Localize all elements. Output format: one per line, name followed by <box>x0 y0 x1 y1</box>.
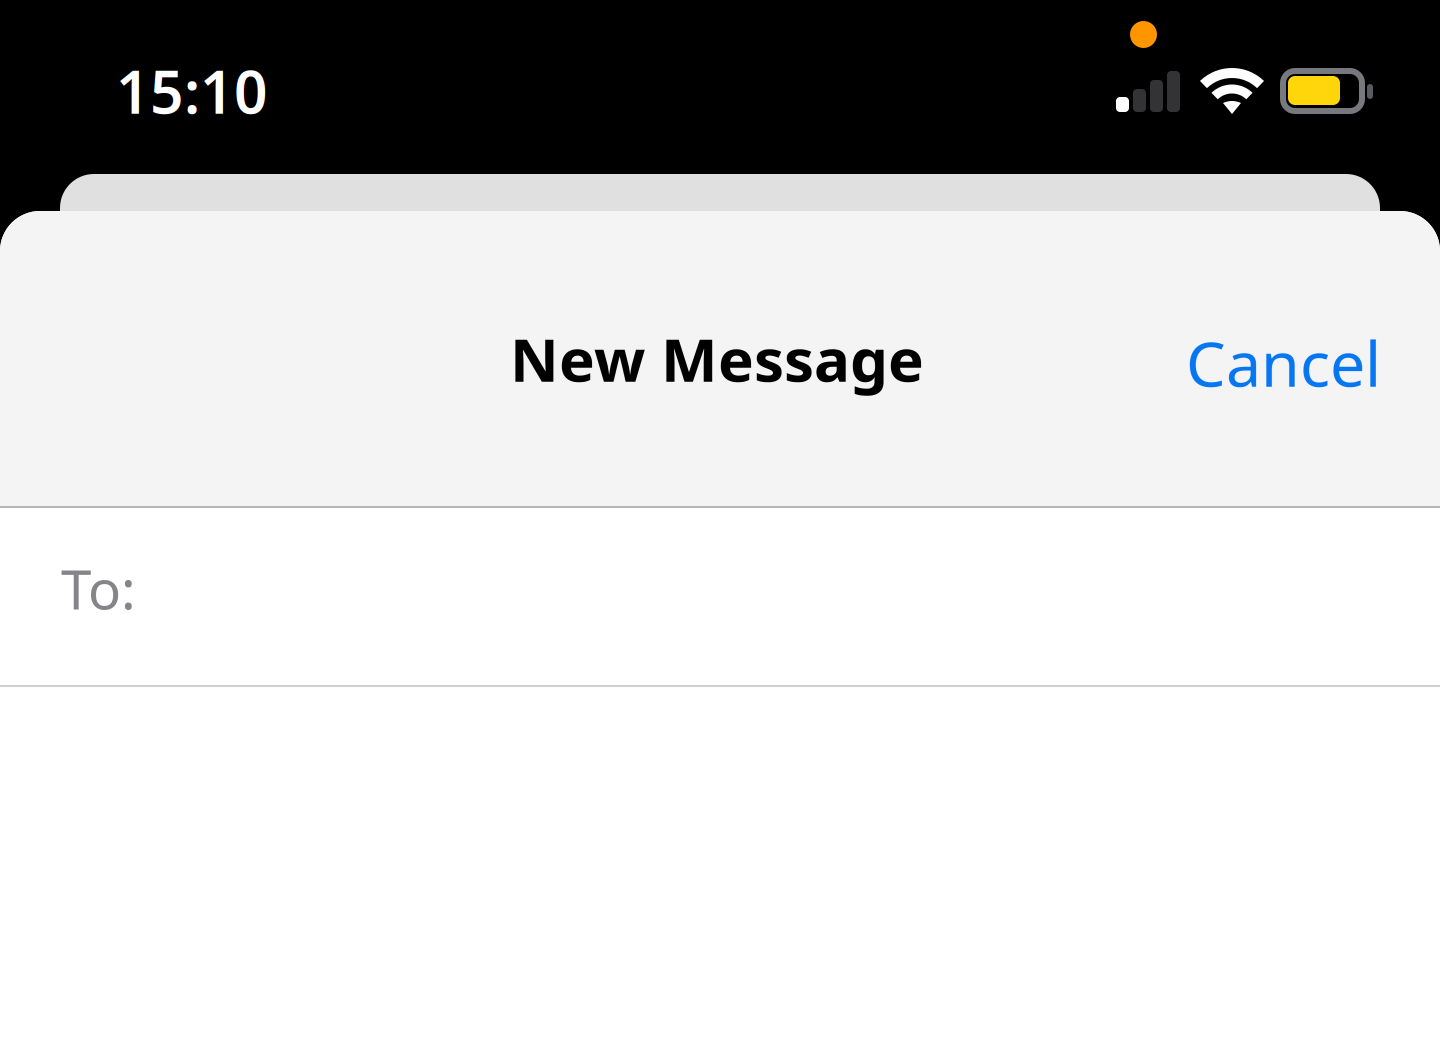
staticText: To: <box>61 552 136 625</box>
staticText: New Message <box>510 319 924 398</box>
staticText: 15:10 <box>116 52 268 130</box>
button[interactable]: Cancel <box>1091 215 1381 510</box>
button[interactable]: To: <box>0 508 1440 685</box>
staticText: Cancel <box>1186 321 1381 404</box>
